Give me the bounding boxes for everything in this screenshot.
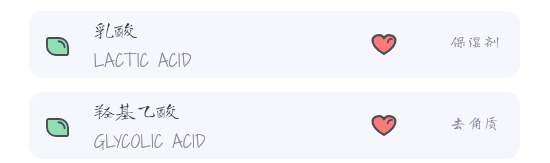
staticText: 羟基乙酸 bbox=[94, 100, 178, 121]
staticText: 保湿剂 bbox=[450, 34, 501, 49]
button[interactable]: 羟基乙酸 bbox=[29, 92, 520, 159]
staticText: LACTIC ACID bbox=[94, 48, 192, 73]
staticText: GLYCOLIC ACID bbox=[94, 129, 207, 154]
button[interactable]: Favorite bbox=[367, 108, 401, 142]
staticText: 乳酸 bbox=[94, 19, 136, 40]
button[interactable]: 乳酸 bbox=[29, 11, 520, 78]
staticText: 去角质 bbox=[450, 115, 501, 130]
button[interactable]: Favorite bbox=[367, 27, 401, 61]
